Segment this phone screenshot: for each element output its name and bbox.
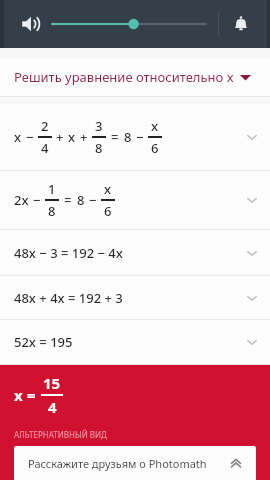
staticText: 8 bbox=[77, 191, 85, 209]
staticText: 3 bbox=[95, 117, 103, 135]
staticText: − bbox=[136, 128, 144, 146]
staticText: Расскажите друзьям о Photomath bbox=[28, 456, 228, 471]
staticText: x bbox=[151, 117, 159, 135]
staticText: = bbox=[64, 191, 72, 209]
staticText: = bbox=[111, 128, 119, 146]
staticText: 8 bbox=[124, 128, 132, 146]
staticText: 8 bbox=[48, 202, 56, 220]
staticText: 8 bbox=[95, 139, 103, 157]
staticText: x bbox=[14, 128, 22, 146]
button[interactable]: Volume bbox=[16, 9, 46, 39]
staticText: + bbox=[56, 128, 64, 146]
staticText: x bbox=[104, 180, 112, 198]
staticText: − bbox=[89, 191, 97, 209]
staticText: 52x = 195 bbox=[14, 333, 73, 351]
staticText: 2 bbox=[41, 117, 49, 135]
staticText: 1 bbox=[48, 180, 56, 198]
staticText: 4 bbox=[41, 139, 49, 157]
button[interactable]: 2x bbox=[0, 171, 270, 229]
button[interactable]: x bbox=[0, 104, 270, 170]
staticText: x bbox=[14, 385, 23, 405]
staticText: 6 bbox=[151, 139, 159, 157]
staticText: + bbox=[80, 128, 88, 146]
staticText: 15 bbox=[43, 373, 61, 393]
button[interactable]: 48x − 3 = 192 − 4x bbox=[0, 230, 270, 275]
staticText: 6 bbox=[104, 202, 112, 220]
staticText: 48x + 4x = 192 + 3 bbox=[14, 289, 123, 307]
button[interactable]: Расскажите друзьям о Photomath bbox=[14, 446, 256, 480]
staticText: 4 bbox=[48, 397, 57, 417]
button[interactable]: 52x = 195 bbox=[0, 320, 270, 364]
staticText: АЛЬТЕРНАТИВНЫЙ ВИД bbox=[14, 429, 107, 440]
button[interactable]: 48x + 4x = 192 + 3 bbox=[0, 276, 270, 319]
staticText: − bbox=[26, 128, 34, 146]
button[interactable] bbox=[52, 0, 206, 48]
staticText: = bbox=[27, 385, 36, 405]
button[interactable]: Решить уравнение относительно x bbox=[0, 58, 270, 96]
staticText: − bbox=[33, 191, 41, 209]
staticText: 48x − 3 = 192 − 4x bbox=[14, 244, 123, 262]
button[interactable]: Notifications bbox=[225, 8, 257, 40]
staticText: x bbox=[68, 128, 76, 146]
staticText: Решить уравнение относительно x bbox=[14, 68, 234, 86]
staticText: 2x bbox=[14, 191, 29, 209]
